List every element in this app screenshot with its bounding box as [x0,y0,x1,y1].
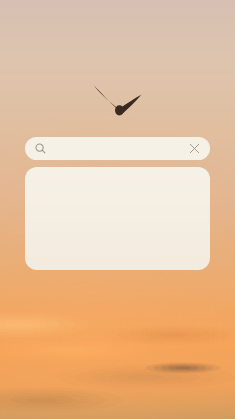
button[interactable]: Search [25,137,210,160]
button[interactable]: Search [34,142,47,155]
button[interactable]: Clear [188,142,201,155]
button[interactable] [25,167,210,270]
